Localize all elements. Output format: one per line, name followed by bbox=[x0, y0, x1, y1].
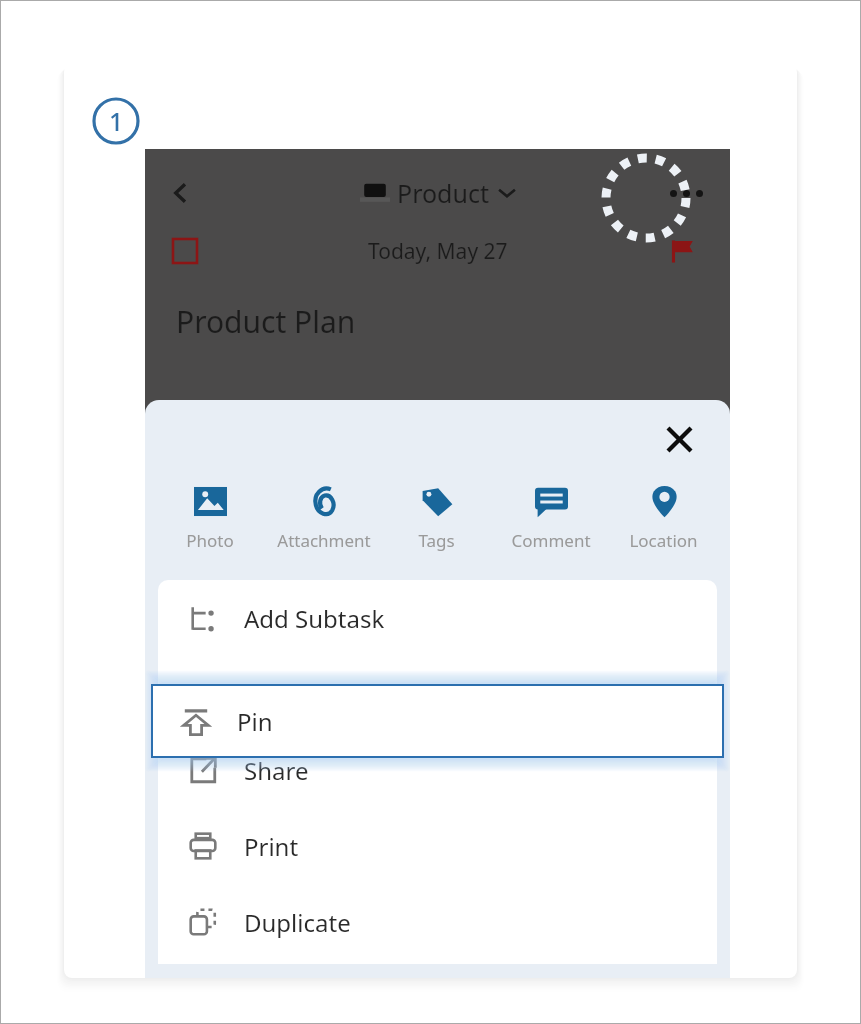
staticText: Attachment bbox=[277, 529, 371, 552]
button[interactable]: Complete task bbox=[165, 231, 205, 271]
button[interactable]: Duplicate bbox=[158, 884, 717, 960]
staticText: Today, May 27 bbox=[368, 237, 508, 266]
button[interactable]: Priority flag bbox=[662, 231, 702, 271]
button[interactable]: Close bbox=[656, 416, 702, 462]
button[interactable]: Attachment bbox=[271, 478, 376, 556]
staticText: Comment bbox=[511, 529, 591, 552]
staticText: Print bbox=[244, 830, 299, 863]
staticText: Location bbox=[629, 529, 698, 552]
staticText: Add Subtask bbox=[244, 602, 385, 635]
button[interactable]: Photo bbox=[157, 478, 262, 556]
button[interactable]: Location bbox=[611, 478, 716, 556]
staticText: Share bbox=[244, 754, 309, 787]
button[interactable]: Back bbox=[159, 171, 203, 215]
staticText: Photo bbox=[186, 529, 234, 552]
staticText: Product Plan bbox=[176, 301, 356, 342]
button[interactable]: Pin bbox=[151, 684, 724, 758]
staticText: Product bbox=[397, 176, 489, 210]
button[interactable]: More options bbox=[662, 169, 710, 217]
button[interactable]: Share bbox=[158, 732, 717, 808]
staticText: Tags bbox=[418, 529, 455, 552]
button[interactable]: Add Subtask bbox=[158, 580, 717, 656]
staticText: Duplicate bbox=[244, 906, 351, 939]
staticText: 1 bbox=[109, 104, 124, 138]
button[interactable]: Tags bbox=[384, 478, 489, 556]
staticText: Pin bbox=[237, 705, 273, 738]
button[interactable]: Comment bbox=[498, 478, 603, 556]
button[interactable]: Print bbox=[158, 808, 717, 884]
